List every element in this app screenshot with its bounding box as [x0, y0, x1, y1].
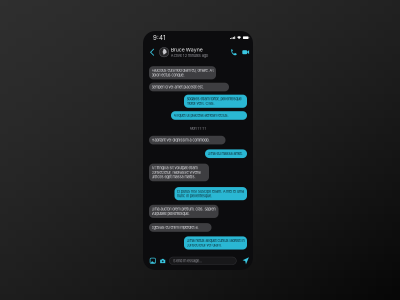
- staticText: Urna eu massa amet.: [207, 151, 242, 156]
- button[interactable]: Back: [148, 45, 156, 59]
- staticText: Egestas eu enim imperdiet a.: [151, 225, 198, 230]
- button[interactable]: Voice call: [227, 45, 240, 59]
- staticText: Bruce Wayne: [171, 46, 203, 53]
- button[interactable]: Photos: [149, 256, 157, 266]
- staticText: Send message...: [173, 258, 202, 263]
- button[interactable]: Send message...: [169, 257, 236, 265]
- staticText: Et purus nisi suscipit etiam. Amet et ur…: [177, 189, 244, 198]
- staticText: Faucibus euismod diam eu, ornare. At dol…: [151, 68, 213, 77]
- staticText: Urna netus aliquet cursus laoreet in con…: [186, 238, 244, 247]
- button[interactable]: Video call: [240, 45, 252, 59]
- button[interactable]: Camera: [159, 256, 167, 266]
- staticText: Urna auctor lorem pretium, cras. Sapien …: [151, 207, 215, 216]
- staticText: Mon 11:11: [189, 126, 206, 130]
- staticText: 9:41: [153, 34, 165, 41]
- button[interactable]: Send: [241, 256, 250, 266]
- staticText: Sodales etiam tortor, pellentesque morbi…: [186, 97, 241, 106]
- staticText: Habitant vel dignissim a commodo.: [151, 138, 209, 142]
- staticText: Active 12 minutes ago: [171, 53, 208, 58]
- staticText: At fringilla sit volutpat etiam consecte…: [151, 166, 200, 179]
- staticText: Aliquet ut placerat aenean lectus.: [173, 113, 228, 118]
- staticText: Semper id vel amet placerat est.: [151, 85, 203, 89]
